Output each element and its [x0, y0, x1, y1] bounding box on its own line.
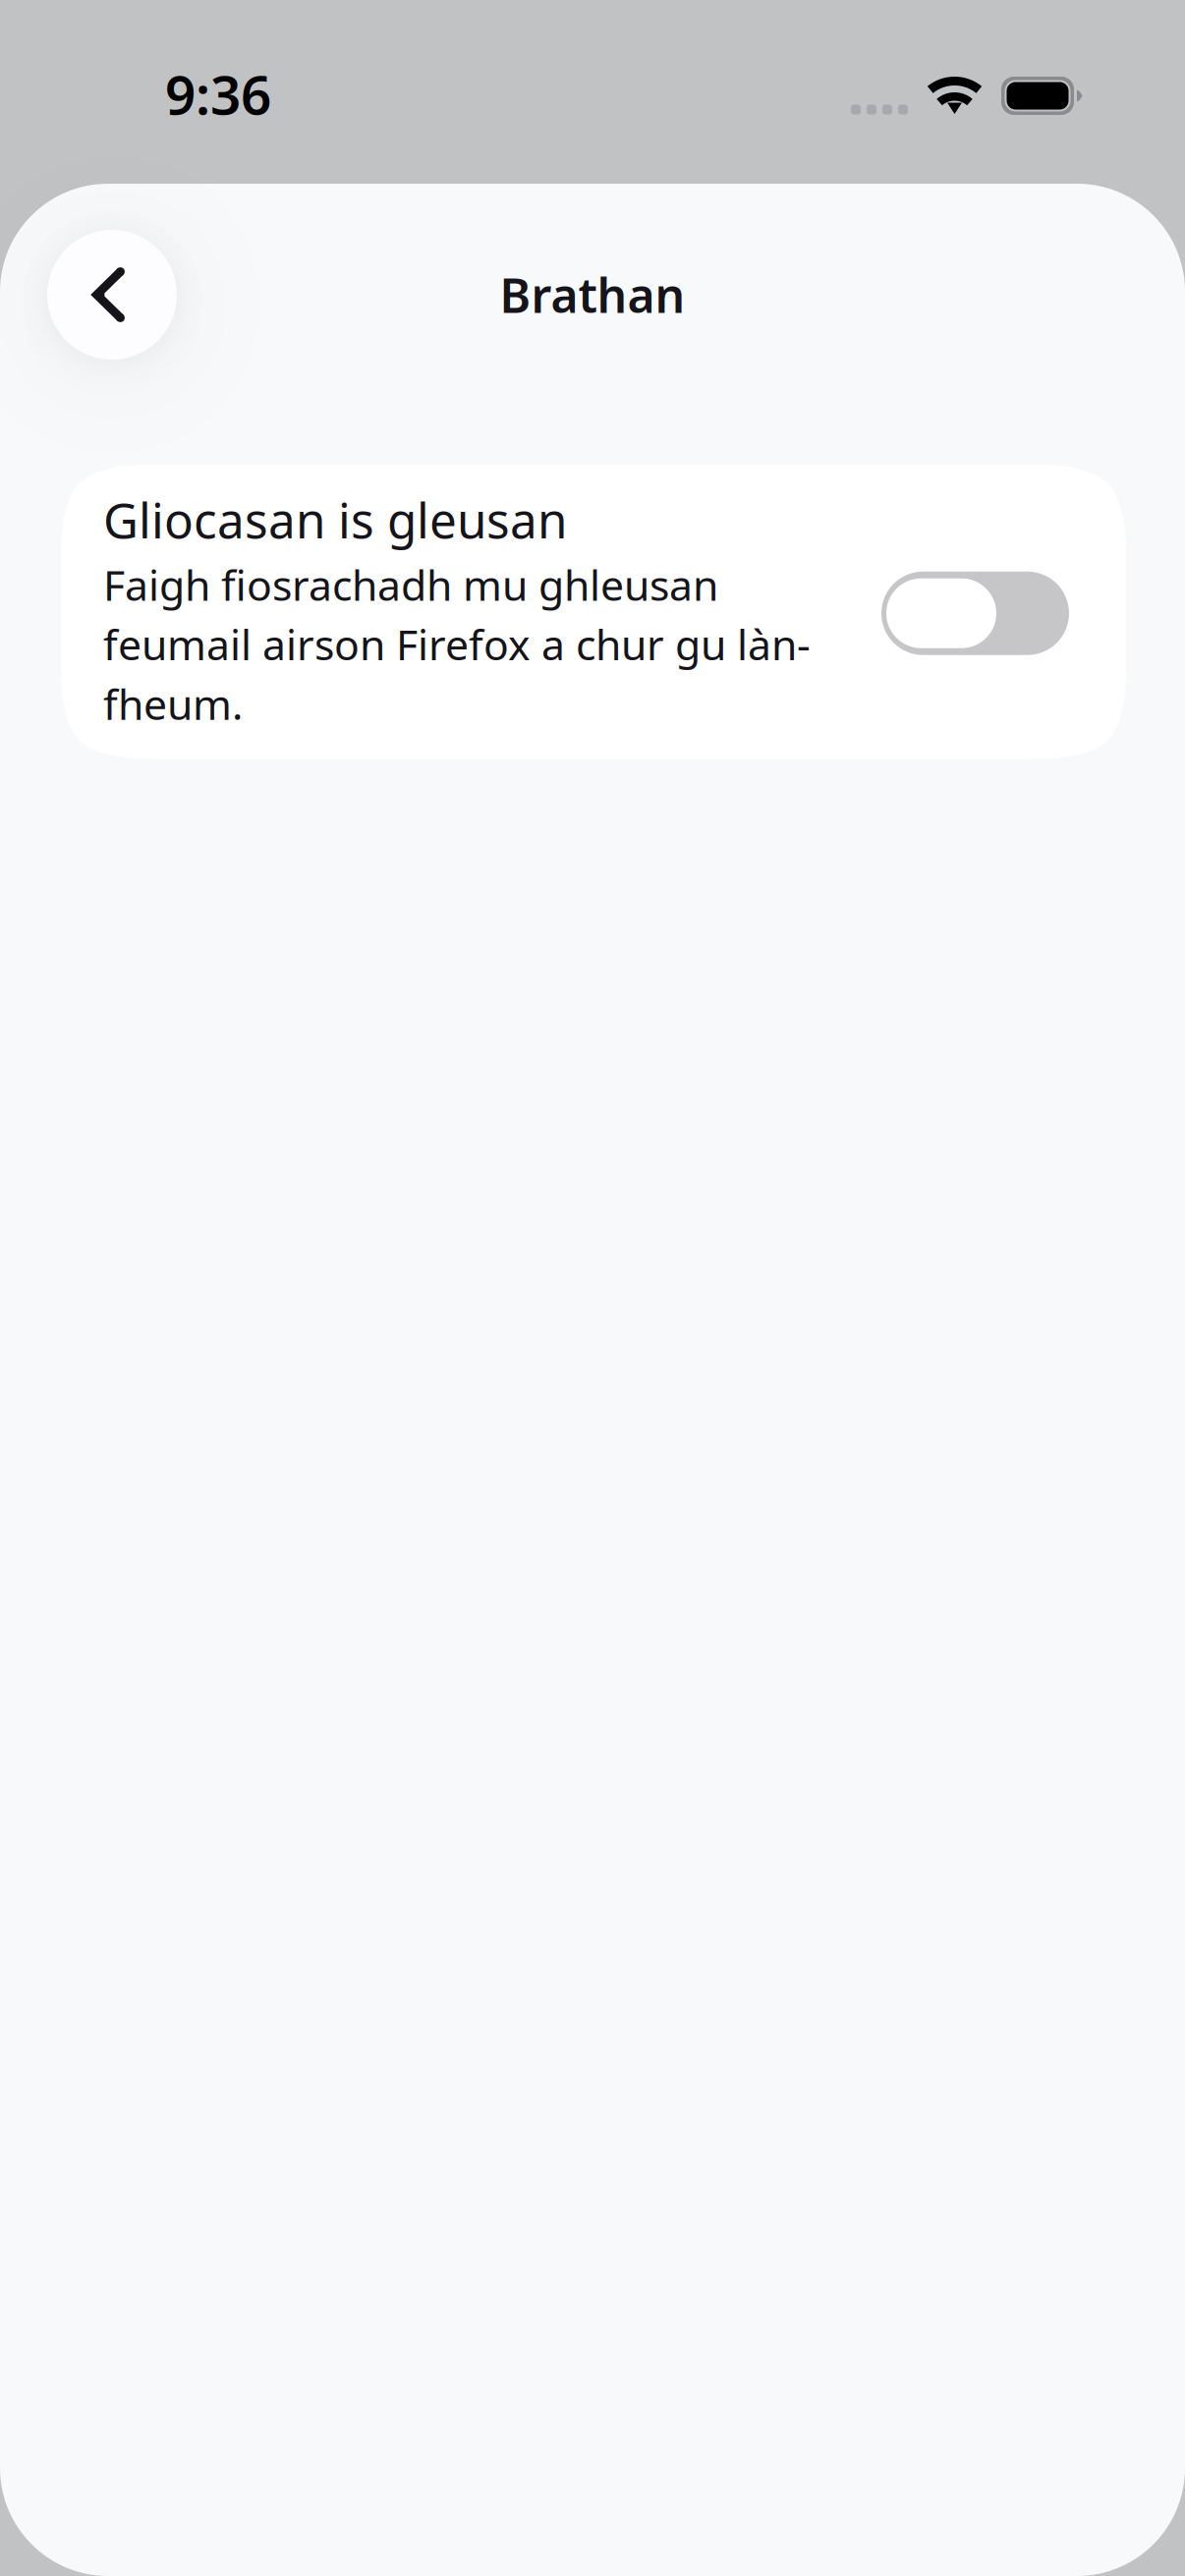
button[interactable]: Gliocasan is gleusan	[881, 568, 1069, 651]
staticText: Brathan	[500, 263, 685, 326]
button[interactable]: Back	[47, 230, 177, 360]
staticText: 9:36	[165, 58, 271, 129]
staticText: Gliocasan is gleusan	[103, 487, 567, 552]
staticText: Faigh fiosrachadh mu ghleusan feumail ai…	[103, 557, 811, 731]
button[interactable]: Gliocasan is gleusan	[61, 465, 1126, 759]
